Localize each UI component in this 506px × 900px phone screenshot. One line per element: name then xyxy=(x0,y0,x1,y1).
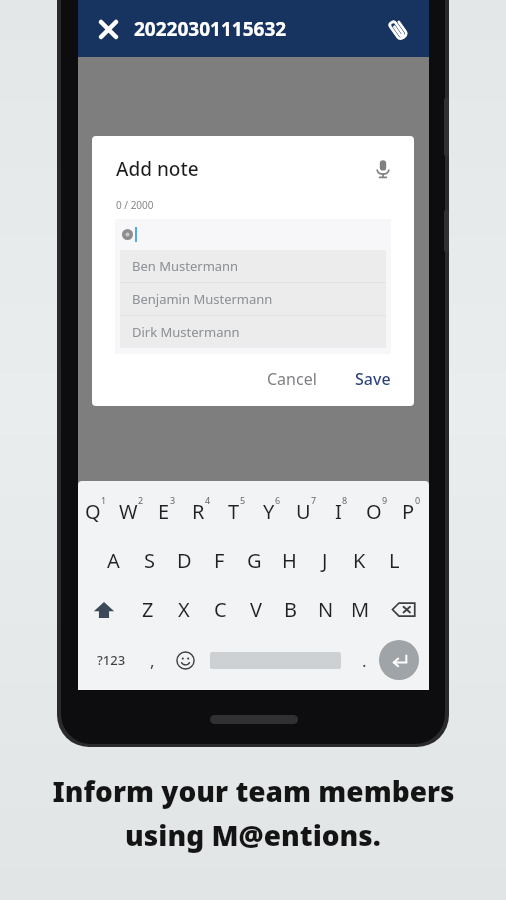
button[interactable]: L xyxy=(377,537,412,584)
staticText: Dirk Mustermann xyxy=(132,323,240,341)
button[interactable]: Q xyxy=(78,487,114,535)
button[interactable]: J xyxy=(307,537,342,584)
staticText: B xyxy=(284,596,297,623)
staticText: Z xyxy=(142,596,154,623)
button[interactable]: P xyxy=(394,487,429,535)
button[interactable]: G xyxy=(237,537,272,584)
staticText: using M@entions. xyxy=(125,816,381,854)
staticText: , xyxy=(150,649,155,672)
staticText: N xyxy=(318,596,334,623)
staticText: U xyxy=(296,498,311,525)
button[interactable]: T xyxy=(219,487,254,535)
staticText: S xyxy=(144,547,155,574)
button[interactable]: Benjamin Mustermann xyxy=(120,283,386,315)
button[interactable]: . xyxy=(349,636,379,684)
button[interactable]: K xyxy=(342,537,377,584)
staticText: 9 xyxy=(382,494,388,506)
button[interactable]: Ben Mustermann xyxy=(115,219,391,354)
staticText: V xyxy=(250,596,262,623)
staticText: D xyxy=(177,547,192,574)
button[interactable]: Voice input xyxy=(366,152,400,186)
button[interactable]: A xyxy=(95,537,131,584)
button[interactable]: Close xyxy=(91,12,125,46)
button[interactable]: V xyxy=(238,586,273,633)
staticText: J xyxy=(322,547,328,574)
staticText: W xyxy=(119,498,138,525)
staticText: Benjamin Mustermann xyxy=(132,290,273,308)
staticText: K xyxy=(353,547,366,574)
staticText: A xyxy=(107,547,120,574)
button[interactable]: Dirk Mustermann xyxy=(120,316,386,348)
button[interactable]: Enter xyxy=(379,640,419,680)
staticText: 1 xyxy=(101,494,107,506)
button[interactable]: N xyxy=(308,586,343,633)
button[interactable]: Z xyxy=(130,586,166,633)
staticText: Save xyxy=(355,368,391,390)
button[interactable]: D xyxy=(167,537,202,584)
staticText: G xyxy=(247,547,262,574)
button[interactable]: , xyxy=(136,636,168,684)
button[interactable]: Cancel xyxy=(257,360,327,398)
staticText: Cancel xyxy=(267,368,317,390)
button[interactable]: R xyxy=(184,487,219,535)
staticText: Inform your team members xyxy=(52,772,455,810)
button[interactable]: Y xyxy=(254,487,289,535)
button[interactable]: ?123 xyxy=(86,636,136,684)
button[interactable]: Attach file xyxy=(380,11,416,47)
staticText: O xyxy=(366,498,382,525)
button[interactable]: F xyxy=(202,537,237,584)
staticText: F xyxy=(214,547,225,574)
staticText: M xyxy=(351,596,370,623)
staticText: P xyxy=(402,498,415,525)
staticText: 8 xyxy=(342,494,348,506)
button[interactable]: Ben Mustermann xyxy=(120,250,386,282)
staticText: T xyxy=(228,498,240,525)
staticText: I xyxy=(335,498,342,525)
staticText: 7 xyxy=(311,494,317,506)
button[interactable]: Save xyxy=(347,360,399,398)
staticText: H xyxy=(282,547,297,574)
button[interactable]: Shift xyxy=(78,586,130,633)
staticText: . xyxy=(362,649,367,672)
button[interactable]: O xyxy=(359,487,394,535)
staticText: ?123 xyxy=(97,651,126,669)
staticText: Q xyxy=(85,498,101,525)
staticText: 6 xyxy=(275,494,281,506)
staticText: C xyxy=(214,596,227,623)
button[interactable]: S xyxy=(131,537,167,584)
button[interactable]: Backspace xyxy=(378,586,429,633)
staticText: L xyxy=(389,547,400,574)
button[interactable]: M xyxy=(343,586,378,633)
button[interactable]: E xyxy=(149,487,184,535)
staticText: X xyxy=(178,596,190,623)
staticText: R xyxy=(192,498,205,525)
staticText: 20220301115632 xyxy=(134,16,287,42)
staticText: 3 xyxy=(170,494,176,506)
staticText: 0 / 2000 xyxy=(116,198,154,212)
staticText: 5 xyxy=(240,494,246,506)
staticText: E xyxy=(158,498,170,525)
button[interactable]: Emoji xyxy=(168,636,202,684)
button[interactable]: C xyxy=(202,586,238,633)
button[interactable]: I xyxy=(324,487,359,535)
button[interactable]: H xyxy=(272,537,307,584)
button[interactable]: W xyxy=(114,487,149,535)
button[interactable]: B xyxy=(273,586,308,633)
staticText: 0 xyxy=(415,494,421,506)
staticText: Ben Mustermann xyxy=(132,257,239,275)
staticText: 2 xyxy=(138,494,144,506)
button[interactable]: U xyxy=(289,487,324,535)
staticText: Y xyxy=(263,498,275,525)
button[interactable]: X xyxy=(166,586,202,633)
staticText: 4 xyxy=(205,494,211,506)
staticText: Add note xyxy=(116,156,199,182)
